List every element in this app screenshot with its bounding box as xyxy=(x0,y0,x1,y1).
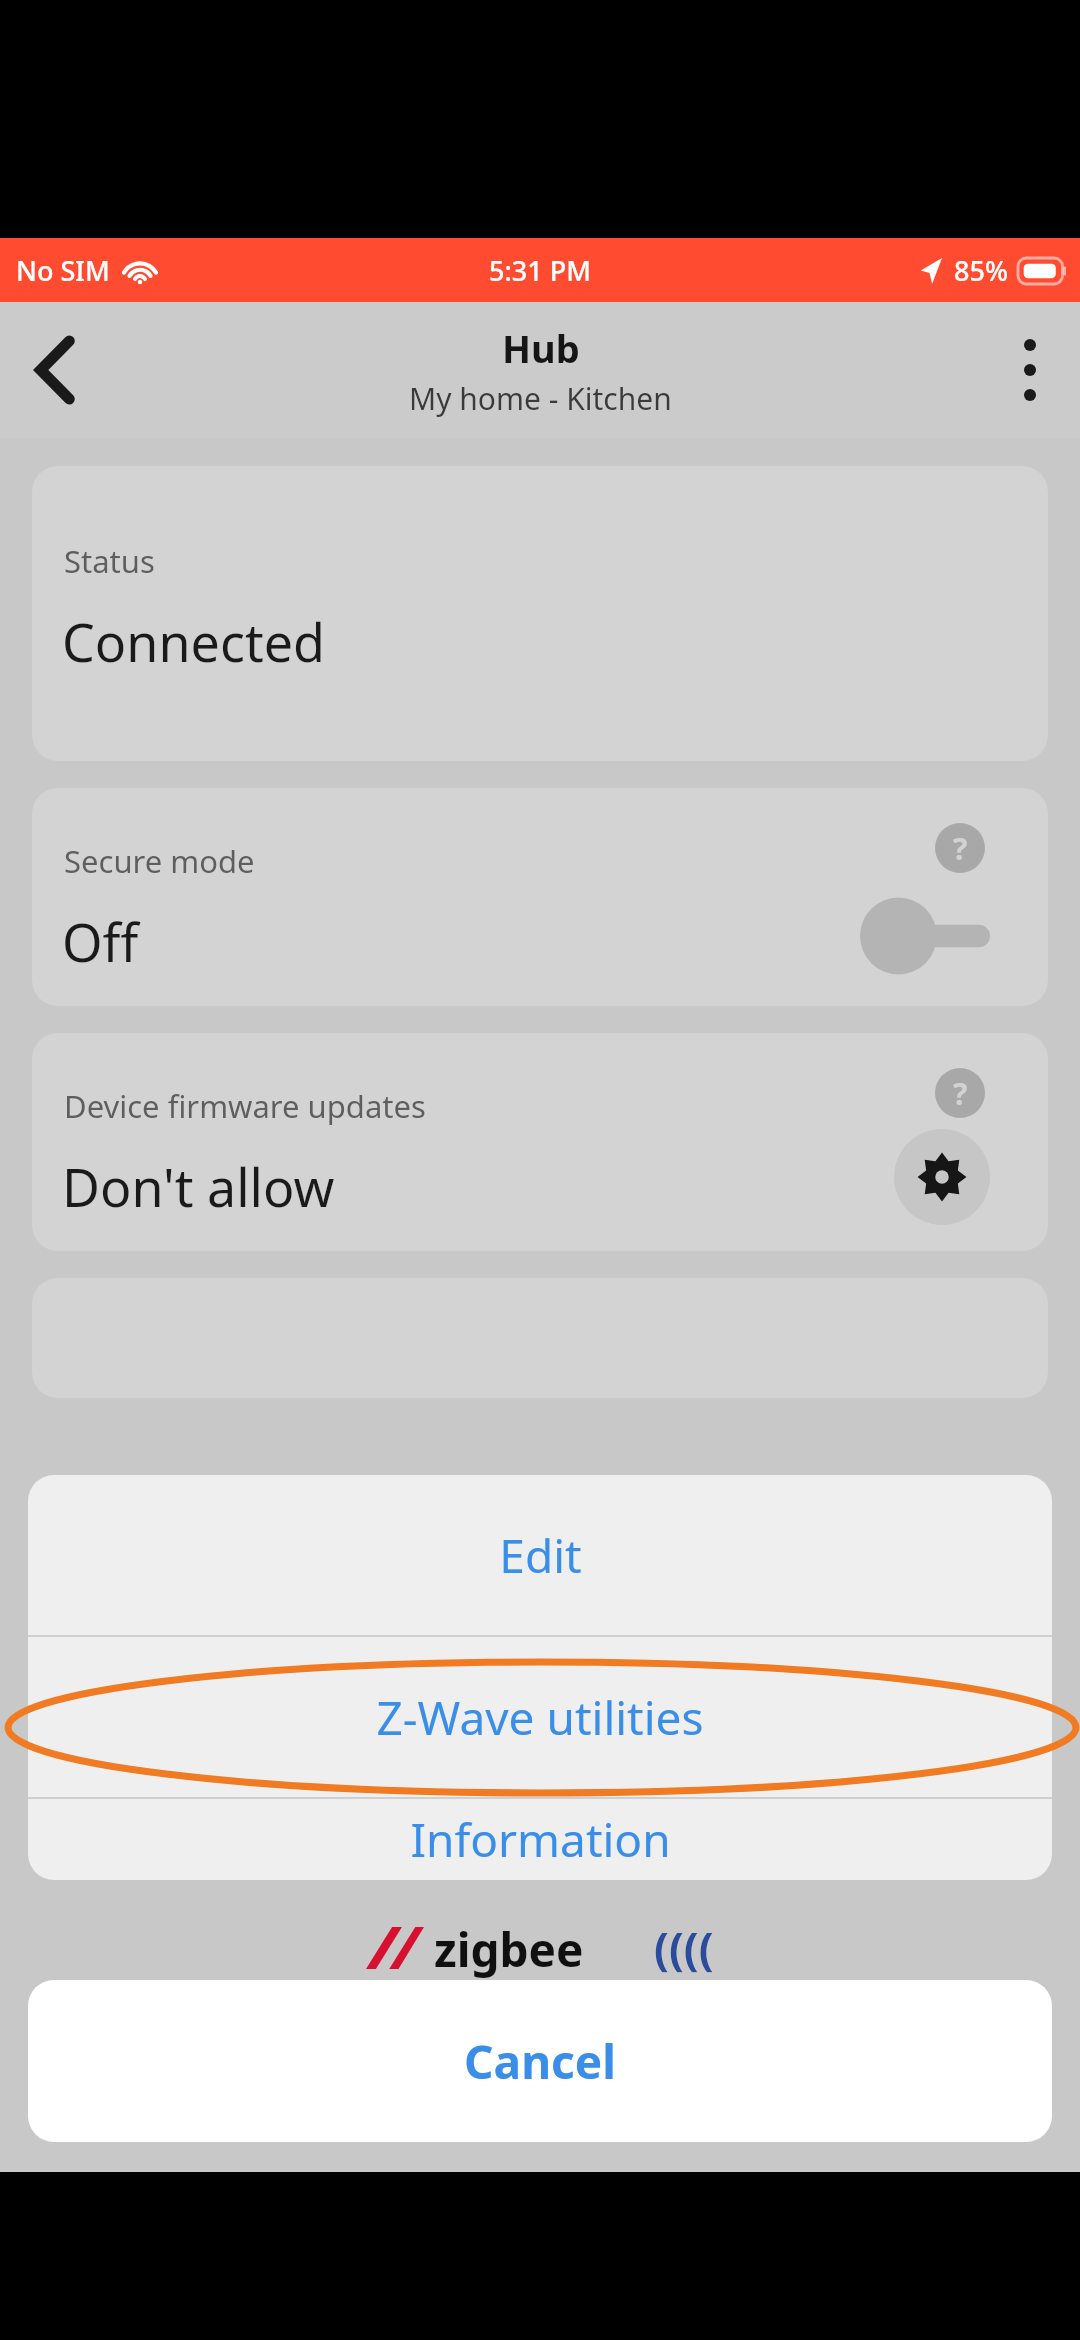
staticText: zigbee xyxy=(434,1918,584,1978)
staticText: Connected xyxy=(62,606,325,677)
button[interactable]: Edit xyxy=(28,1475,1052,1635)
staticText: Cancel xyxy=(464,2030,616,2093)
button[interactable]: Status xyxy=(32,466,1048,761)
staticText: (((( xyxy=(654,1918,714,1978)
staticText: My home - Kitchen xyxy=(409,378,672,419)
button[interactable]: More options xyxy=(980,302,1080,438)
button[interactable]: Help xyxy=(932,1065,988,1121)
button[interactable]: Help xyxy=(932,820,988,876)
staticText: No SIM xyxy=(16,252,110,289)
staticText: 5:31 PM xyxy=(489,252,591,289)
button[interactable]: Secure mode toggle, off xyxy=(860,896,990,976)
staticText: Don't allow xyxy=(62,1151,335,1222)
button[interactable]: Settings xyxy=(894,1129,990,1225)
staticText: Edit xyxy=(499,1524,582,1587)
button[interactable]: Information xyxy=(28,1799,1052,1880)
staticText: Secure mode xyxy=(64,840,255,882)
button[interactable]: Z-Wave utilities xyxy=(28,1637,1052,1797)
staticText: Z-Wave utilities xyxy=(376,1686,704,1749)
staticText: Off xyxy=(62,906,139,977)
staticText: Device firmware updates xyxy=(64,1085,426,1127)
staticText: Status xyxy=(64,540,155,582)
staticText: ? xyxy=(953,1073,968,1114)
button[interactable]: Secure mode xyxy=(32,788,1048,1006)
button[interactable]: Cancel xyxy=(28,1980,1052,2142)
staticText: ? xyxy=(953,828,968,869)
staticText: Information xyxy=(410,1808,671,1871)
staticText: 85% xyxy=(954,252,1008,289)
button[interactable]: Back xyxy=(0,302,110,438)
button[interactable]: Device firmware updates xyxy=(32,1033,1048,1251)
staticText: Hub xyxy=(502,322,580,374)
